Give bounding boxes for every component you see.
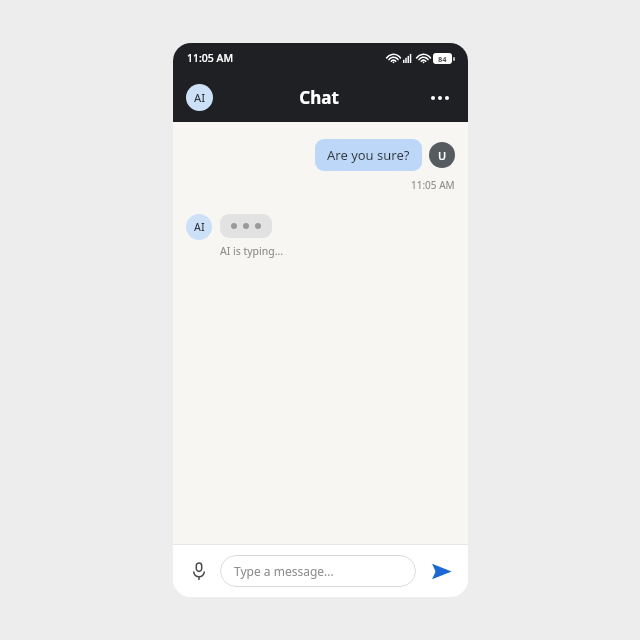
button[interactable]: Voice input [185,557,213,585]
staticText: Type a message... [234,563,334,579]
staticText: 84 [438,54,447,64]
staticText: 11:05 AM [411,178,455,192]
staticText: AI is typing... [220,244,284,258]
staticText: U [438,148,447,163]
staticText: AI [194,90,206,105]
button[interactable]: More options [425,83,455,113]
staticText: 11:05 AM [187,51,234,65]
button[interactable] [220,214,272,238]
staticText: Are you sure? [327,146,410,164]
button[interactable]: Type a message... [220,555,416,587]
button[interactable]: Are you sure? [315,139,422,171]
staticText: AI [194,220,205,234]
staticText: Chat [299,86,339,109]
button[interactable]: AI [186,84,213,111]
button[interactable]: Send [426,556,456,586]
